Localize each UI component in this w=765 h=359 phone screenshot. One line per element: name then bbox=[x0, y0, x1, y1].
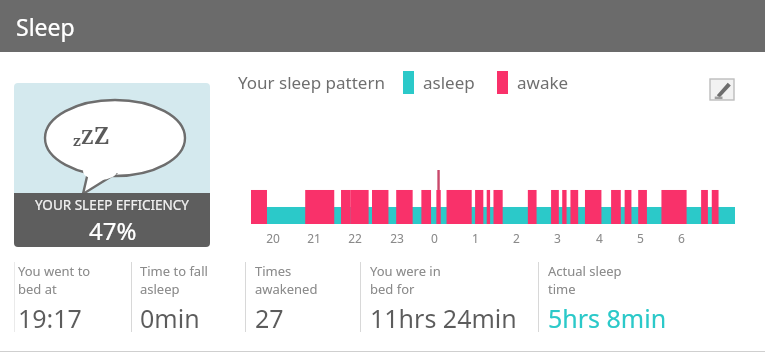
staticText: 23 bbox=[390, 230, 404, 246]
button[interactable]: Actual sleep bbox=[548, 262, 738, 332]
staticText: 5 bbox=[637, 230, 644, 246]
button[interactable]: You went to bbox=[18, 262, 131, 332]
staticText: bed at bbox=[18, 280, 57, 298]
staticText: Actual sleep bbox=[548, 262, 622, 280]
staticText: 11hrs 24min bbox=[370, 301, 517, 332]
staticText: 1 bbox=[472, 230, 479, 246]
staticText: 20 bbox=[266, 230, 280, 246]
staticText: YOUR SLEEP EFFICIENCY bbox=[35, 196, 190, 214]
staticText: 3 bbox=[554, 230, 561, 246]
staticText: Z bbox=[94, 119, 110, 150]
staticText: awakened bbox=[255, 280, 318, 298]
staticText: Times bbox=[255, 262, 292, 280]
staticText: 6 bbox=[678, 230, 685, 246]
button[interactable]: Edit bbox=[709, 77, 735, 103]
staticText: 47% bbox=[89, 214, 137, 247]
button[interactable]: Sleep pattern chart bbox=[251, 170, 735, 224]
staticText: 5hrs 8min bbox=[548, 301, 667, 332]
staticText: Sleep bbox=[16, 11, 75, 42]
staticText: bed for bbox=[370, 280, 415, 298]
staticText: 0min bbox=[140, 301, 200, 332]
staticText: 0 bbox=[431, 230, 438, 246]
staticText: Time to fall bbox=[140, 262, 208, 280]
staticText: 19:17 bbox=[18, 301, 82, 332]
button[interactable]: Time to fall bbox=[140, 262, 245, 332]
staticText: 21 bbox=[307, 230, 321, 246]
button[interactable]: Times bbox=[255, 262, 362, 332]
staticText: Your sleep pattern bbox=[238, 71, 385, 94]
staticText: 27 bbox=[255, 301, 284, 332]
staticText: Z bbox=[81, 124, 94, 150]
staticText: asleep bbox=[140, 280, 180, 298]
button[interactable]: You were in bbox=[370, 262, 540, 332]
staticText: asleep bbox=[423, 71, 475, 94]
staticText: time bbox=[548, 280, 576, 298]
staticText: You were in bbox=[370, 262, 441, 280]
staticText: z bbox=[73, 130, 81, 150]
staticText: 22 bbox=[348, 230, 362, 246]
staticText: 2 bbox=[513, 230, 520, 246]
staticText: awake bbox=[517, 71, 569, 94]
staticText: You went to bbox=[18, 262, 91, 280]
button[interactable]: z bbox=[14, 83, 210, 247]
staticText: 4 bbox=[596, 230, 603, 246]
